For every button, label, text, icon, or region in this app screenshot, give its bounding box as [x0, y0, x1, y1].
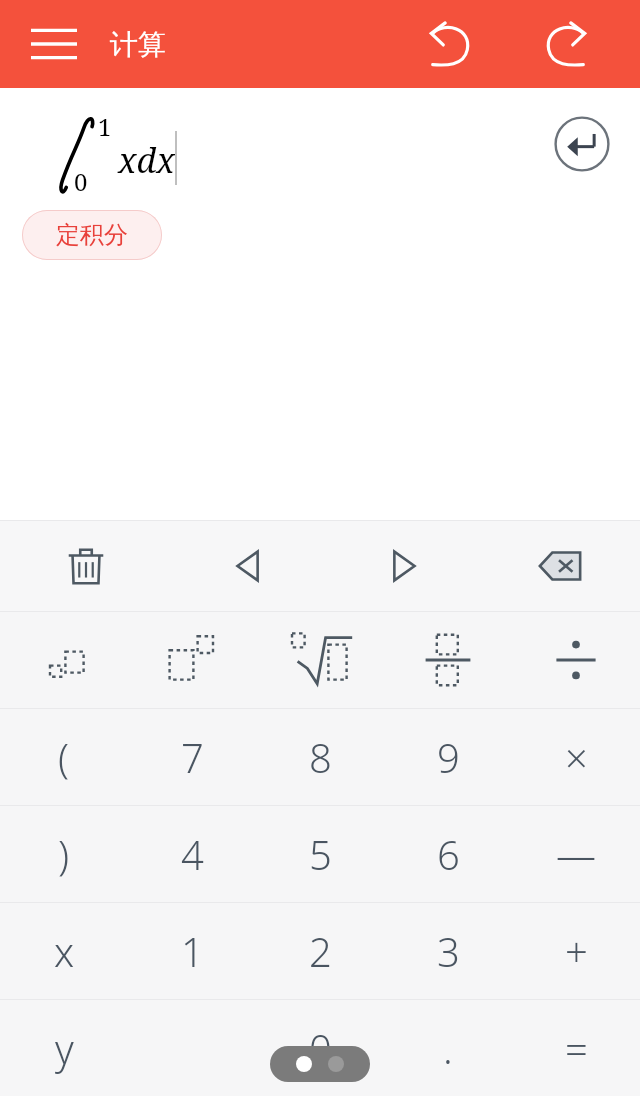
staticText: ( [58, 730, 70, 784]
button[interactable]: . [384, 1000, 512, 1096]
staticText: 4 [181, 827, 204, 881]
button[interactable]: — [512, 806, 640, 902]
staticText: × [565, 730, 588, 784]
button[interactable]: 8 [256, 709, 384, 805]
button[interactable]: 4 [128, 806, 256, 902]
button[interactable]: + [512, 903, 640, 999]
staticText: 2 [309, 924, 332, 978]
button[interactable]: 5 [256, 806, 384, 902]
button[interactable]: × [512, 709, 640, 805]
staticText: 0 [309, 1021, 332, 1075]
button[interactable]: Clear [0, 521, 172, 611]
button[interactable]: 6 [384, 806, 512, 902]
button[interactable]: = [512, 1000, 640, 1096]
staticText: 计算 [110, 27, 166, 62]
button[interactable]: Power [128, 612, 256, 708]
button[interactable]: 1 [128, 903, 256, 999]
button[interactable]: Fraction [384, 612, 512, 708]
button[interactable]: 0 [256, 1000, 384, 1096]
staticText: . [443, 1021, 453, 1075]
button[interactable]: 9 [384, 709, 512, 805]
staticText: 0 [74, 165, 88, 198]
button[interactable]: Enter [554, 116, 610, 172]
staticText: x [54, 924, 75, 978]
staticText: 定积分 [56, 220, 128, 250]
staticText: ) [58, 827, 70, 881]
button[interactable]: Move right [326, 521, 480, 611]
button[interactable]: Root [256, 612, 384, 708]
button[interactable]: 7 [128, 709, 256, 805]
staticText: y [55, 1021, 74, 1075]
staticText: 1 [98, 110, 112, 143]
button[interactable]: Log [0, 612, 128, 708]
staticText: 1 [181, 924, 204, 978]
button[interactable]: 3 [384, 903, 512, 999]
button[interactable]: Redo [528, 6, 604, 82]
staticText: 3 [437, 924, 460, 978]
staticText: 6 [437, 827, 460, 881]
staticText: 7 [181, 730, 204, 784]
staticText: xdx [118, 137, 175, 183]
button[interactable]: Divide [512, 612, 640, 708]
staticText: — [556, 827, 596, 881]
staticText: 9 [437, 730, 460, 784]
button[interactable]: Menu [18, 8, 90, 80]
button[interactable]: Move left [172, 521, 326, 611]
button[interactable]: 定积分 [22, 210, 162, 260]
button[interactable]: Backspace [480, 521, 640, 611]
staticText: + [565, 924, 588, 978]
button[interactable]: x [0, 903, 128, 999]
button[interactable]: ( [0, 709, 128, 805]
staticText: = [565, 1021, 588, 1075]
button[interactable]: y [0, 1000, 128, 1096]
button[interactable]: 2 [256, 903, 384, 999]
staticText: 5 [309, 827, 332, 881]
button[interactable]: ) [0, 806, 128, 902]
button[interactable]: Undo [412, 6, 488, 82]
staticText: 8 [309, 730, 332, 784]
